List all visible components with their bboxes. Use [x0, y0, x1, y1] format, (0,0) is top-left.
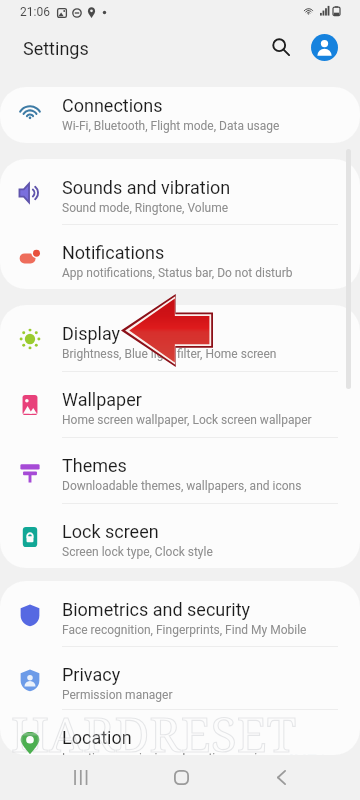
- staticText: Themes: [62, 455, 127, 476]
- button[interactable]: Connections: [0, 87, 360, 133]
- button[interactable]: Wallpaper: [0, 371, 360, 436]
- button[interactable]: Notifications: [0, 224, 360, 289]
- staticText: Home screen wallpaper, Lock screen wallp…: [62, 413, 312, 427]
- button[interactable]: Themes: [0, 437, 360, 502]
- staticText: Lock screen: [62, 521, 159, 542]
- staticText: Notifications: [62, 242, 165, 263]
- button[interactable]: Privacy: [0, 646, 360, 711]
- staticText: Face recognition, Fingerprints, Find My …: [62, 623, 307, 637]
- button[interactable]: Sounds and vibration: [0, 159, 360, 224]
- button[interactable]: Location: [0, 709, 360, 755]
- button[interactable]: Biometrics and security: [0, 581, 360, 646]
- staticText: Brightness, Blue light filter, Home scre…: [62, 347, 277, 361]
- staticText: Sounds and vibration: [62, 177, 231, 198]
- button[interactable]: Display: [0, 305, 360, 370]
- staticText: Wallpaper: [62, 389, 142, 410]
- staticText: Permission manager: [62, 688, 173, 702]
- staticText: Biometrics and security: [62, 599, 251, 620]
- button[interactable]: Recent apps: [45, 755, 115, 800]
- button[interactable]: Samsung account: [311, 34, 338, 61]
- staticText: Downloadable themes, wallpapers, and ico…: [62, 479, 302, 493]
- staticText: Sound mode, Ringtone, Volume: [62, 201, 229, 215]
- staticText: Screen lock type, Clock style: [62, 545, 213, 559]
- staticText: Display: [62, 323, 121, 344]
- staticText: Location: [62, 727, 132, 748]
- staticText: INFO: [289, 751, 330, 772]
- staticText: Wi-Fi, Bluetooth, Flight mode, Data usag…: [62, 119, 280, 133]
- staticText: Settings: [23, 38, 89, 59]
- button[interactable]: Back: [246, 755, 316, 800]
- staticText: 21:06: [20, 5, 50, 19]
- staticText: Location permissions, Location services: [62, 751, 277, 755]
- staticText: Connections: [62, 95, 163, 116]
- staticText: Privacy: [62, 664, 121, 685]
- button[interactable]: Home: [146, 755, 216, 800]
- staticText: HARDRESET: [11, 701, 297, 766]
- button[interactable]: Search: [264, 30, 298, 64]
- staticText: App notifications, Status bar, Do not di…: [62, 266, 293, 280]
- staticText: HARDRESET: [11, 701, 297, 766]
- button[interactable]: Lock screen: [0, 503, 360, 568]
